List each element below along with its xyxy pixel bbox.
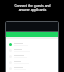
button[interactable] — [6, 41, 58, 47]
button[interactable] — [6, 59, 58, 65]
button[interactable] — [6, 47, 58, 53]
button[interactable] — [6, 65, 58, 71]
staticText: Connect the guests and answer applicants — [14, 4, 51, 12]
button[interactable] — [6, 53, 58, 59]
